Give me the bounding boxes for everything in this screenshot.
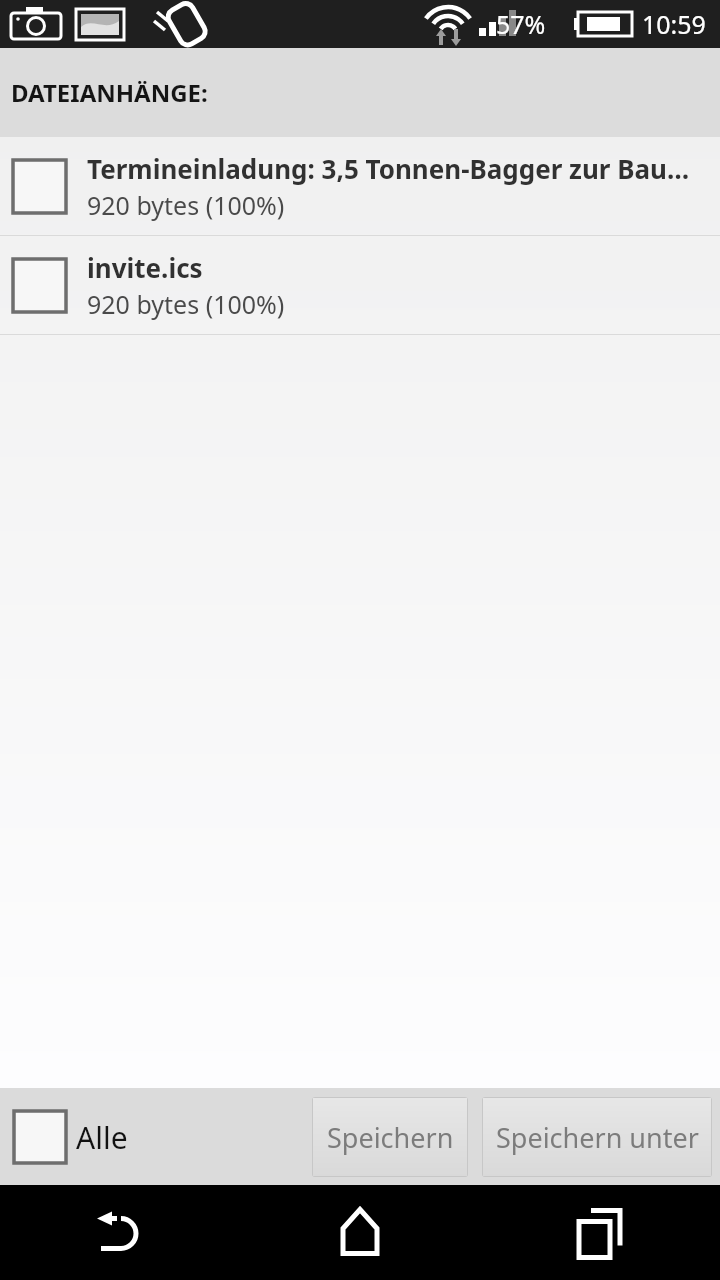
button[interactable]: Recents <box>480 1185 720 1280</box>
staticText: 920 bytes (100%) <box>87 287 285 321</box>
staticText: invite.ics <box>87 250 203 285</box>
button[interactable]: Select attachment <box>0 236 720 334</box>
button[interactable]: Speichern <box>312 1097 468 1177</box>
staticText: 57% <box>496 7 546 41</box>
staticText: 920 bytes (100%) <box>87 188 285 222</box>
button[interactable]: Home <box>240 1185 480 1280</box>
staticText: DATEIANHÄNGE: <box>11 76 208 109</box>
button[interactable]: Select attachment <box>11 257 68 314</box>
button[interactable]: Select attachment <box>0 137 720 235</box>
staticText: Speichern <box>327 1119 454 1156</box>
staticText: Alle <box>76 1117 128 1158</box>
button[interactable]: Select attachment <box>11 158 68 215</box>
staticText: Speichern unter <box>496 1119 699 1156</box>
button[interactable]: Speichern unter <box>482 1097 712 1177</box>
staticText: Termineinladung: 3,5 Tonnen-Bagger zur B… <box>87 151 690 186</box>
button[interactable]: Alle <box>12 1109 128 1165</box>
button[interactable]: Back <box>0 1185 240 1280</box>
staticText: 10:59 <box>642 7 706 41</box>
